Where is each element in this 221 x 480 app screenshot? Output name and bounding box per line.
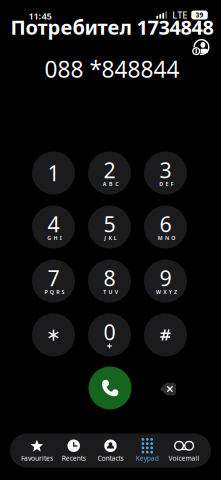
staticText: MNO bbox=[158, 234, 175, 242]
button[interactable]: Voicemail bbox=[166, 434, 202, 466]
staticText: 8 bbox=[103, 264, 115, 292]
button[interactable]: 1 bbox=[32, 151, 75, 194]
staticText: TUV bbox=[103, 288, 118, 296]
staticText: 088 *848844 bbox=[44, 54, 179, 84]
button[interactable]: Call bbox=[88, 366, 131, 409]
button[interactable]: 6 bbox=[144, 205, 187, 248]
button[interactable]: 0 bbox=[88, 313, 131, 356]
staticText: PQRS bbox=[45, 288, 64, 296]
staticText: 0 bbox=[103, 318, 115, 346]
button[interactable]: Keypad bbox=[129, 434, 166, 466]
staticText: GHI bbox=[47, 234, 62, 242]
staticText: 5 bbox=[103, 210, 115, 238]
staticText: Contacts bbox=[97, 454, 123, 463]
button[interactable]: 8 bbox=[88, 259, 131, 302]
button[interactable]: Delete bbox=[155, 377, 181, 401]
button[interactable]: 7 bbox=[32, 259, 75, 302]
button[interactable]: Favourites bbox=[18, 434, 55, 466]
staticText: 11:45 bbox=[28, 10, 51, 22]
button[interactable] bbox=[144, 313, 187, 356]
button[interactable]: 3 bbox=[144, 151, 187, 194]
button[interactable]: 5 bbox=[88, 205, 131, 248]
button[interactable]: 2 bbox=[88, 151, 131, 194]
staticText: 3 bbox=[159, 156, 171, 184]
button[interactable] bbox=[32, 313, 75, 356]
staticText: 39 bbox=[195, 11, 203, 19]
staticText: DEF bbox=[159, 180, 174, 188]
button[interactable]: 9 bbox=[144, 259, 187, 302]
staticText: Voicemail bbox=[169, 454, 200, 463]
staticText: 7 bbox=[47, 264, 59, 292]
staticText: LTE bbox=[172, 9, 187, 21]
staticText: Favourites bbox=[21, 454, 53, 463]
staticText: Keypad bbox=[136, 454, 159, 463]
button[interactable]: Contacts bbox=[92, 434, 129, 466]
staticText: 4 bbox=[47, 210, 59, 238]
staticText: 6 bbox=[159, 210, 171, 238]
button[interactable]: 4 bbox=[32, 205, 75, 248]
staticText: 1 bbox=[47, 159, 59, 187]
staticText: JKL bbox=[104, 234, 117, 242]
staticText: ABC bbox=[103, 180, 118, 188]
staticText: 9 bbox=[159, 264, 171, 292]
button[interactable]: Add contact bbox=[189, 35, 213, 59]
staticText: Потребител 1734848 bbox=[10, 14, 213, 40]
staticText: 2 bbox=[103, 156, 115, 184]
staticText: Recents bbox=[62, 454, 86, 463]
button[interactable]: Recents bbox=[55, 434, 92, 466]
staticText: WXYZ bbox=[156, 288, 177, 296]
